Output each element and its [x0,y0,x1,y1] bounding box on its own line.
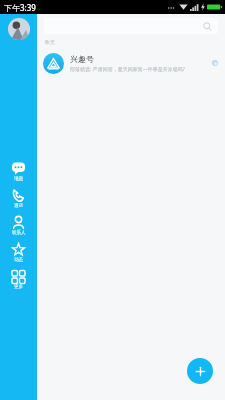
staticText: 兴趣号 [70,54,94,64]
staticText: 下午3:39 [4,2,36,13]
staticText: 昨天 [45,39,55,45]
button[interactable]: 消息 [0,158,37,185]
button[interactable]: 通话 [0,185,37,212]
button[interactable]: Profile [8,18,30,40]
button[interactable]: Search [44,18,218,34]
staticText: 联系人 [12,230,26,236]
button[interactable]: 动态 [0,239,37,266]
button[interactable]: 更多 [0,266,37,293]
staticText: 动态 [14,257,23,263]
button[interactable]: 兴趣号 [37,48,225,78]
staticText: 消息 [14,176,23,182]
staticText: 通话 [14,203,23,209]
button[interactable]: New chat [187,358,213,384]
button[interactable]: 联系人 [0,212,37,239]
staticText: 部落精选: 严肃回答，夏天回家第一件事是开冰箱吗? [70,66,185,73]
staticText: 更多 [14,284,23,290]
